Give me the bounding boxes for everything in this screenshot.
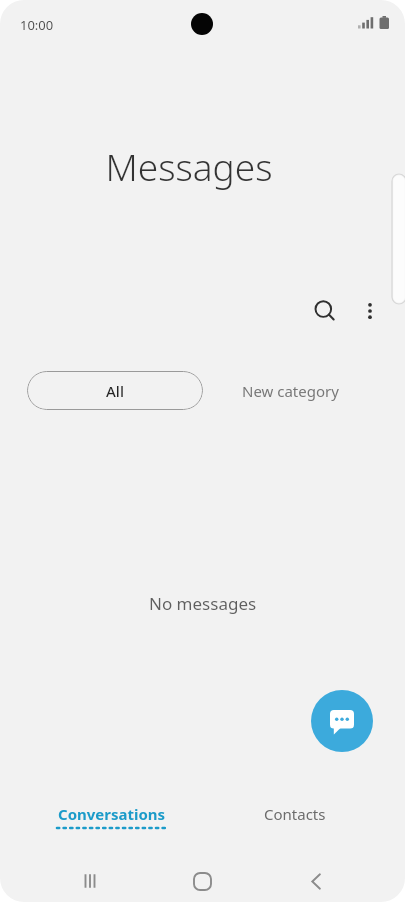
button[interactable]: Contacts <box>215 795 375 841</box>
button[interactable]: All <box>27 371 203 410</box>
button[interactable]: Search <box>303 289 347 333</box>
button[interactable]: Home <box>174 853 230 902</box>
button[interactable]: Conversations <box>8 795 215 841</box>
button[interactable]: New conversation <box>311 690 373 752</box>
staticText: Messages <box>105 141 273 191</box>
staticText: All <box>106 381 124 401</box>
button[interactable]: More options <box>348 289 392 333</box>
staticText: No messages <box>149 592 257 615</box>
button[interactable]: Back <box>288 853 344 902</box>
staticText: 10:00 <box>20 16 54 34</box>
button[interactable]: Recent apps <box>62 853 118 902</box>
button[interactable]: New category <box>219 371 361 410</box>
staticText: Conversations <box>58 804 166 824</box>
staticText: Contacts <box>264 804 326 824</box>
staticText: New category <box>242 381 339 401</box>
